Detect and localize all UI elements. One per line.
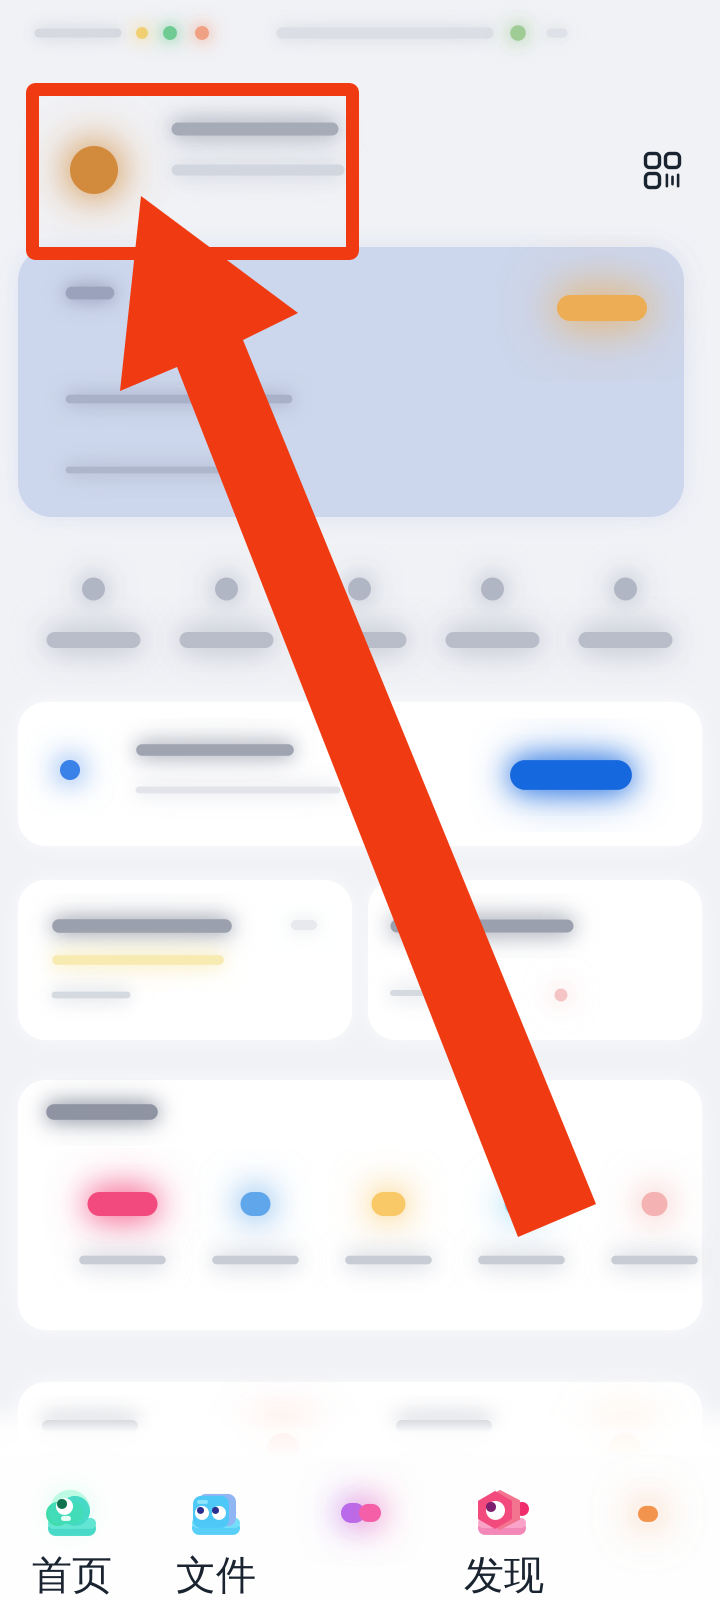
button[interactable]: 发现	[432, 1455, 576, 1600]
button[interactable]	[293, 558, 426, 668]
staticText: 发现	[464, 1551, 544, 1600]
button[interactable]	[28, 85, 358, 255]
button[interactable]: Tab	[576, 1455, 720, 1600]
button[interactable]	[588, 1166, 720, 1286]
button[interactable]	[455, 1166, 588, 1286]
button[interactable]	[27, 558, 160, 668]
button[interactable]	[18, 247, 684, 517]
button[interactable]	[559, 558, 692, 668]
button[interactable]	[160, 558, 293, 668]
button[interactable]: Scan	[630, 138, 695, 203]
button[interactable]	[18, 702, 702, 846]
button[interactable]	[18, 880, 352, 1040]
button[interactable]	[322, 1166, 455, 1286]
button[interactable]: Tab	[288, 1455, 432, 1600]
button[interactable]	[189, 1166, 322, 1286]
button[interactable]	[56, 1166, 189, 1286]
button[interactable]: 首页	[0, 1455, 144, 1600]
button[interactable]	[368, 880, 702, 1040]
button[interactable]	[426, 558, 559, 668]
staticText: 首页	[32, 1551, 112, 1600]
button[interactable]: 文件	[144, 1455, 288, 1600]
staticText: 文件	[176, 1551, 256, 1600]
